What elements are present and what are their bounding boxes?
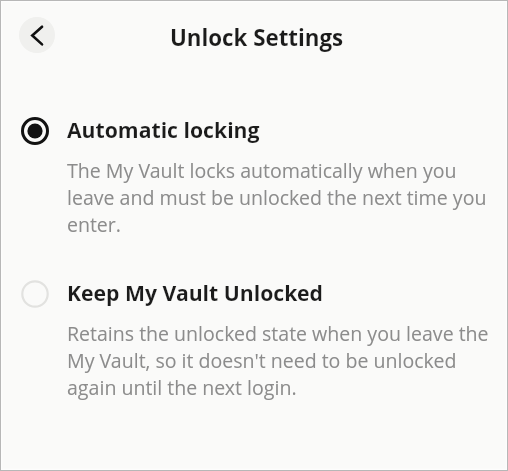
staticText: Keep My Vault Unlocked <box>67 278 323 307</box>
staticText: The My Vault locks automatically when yo… <box>67 157 497 238</box>
staticText: Unlock Settings <box>170 22 344 52</box>
button[interactable]: Back <box>19 17 55 53</box>
button[interactable]: Keep My Vault Unlocked <box>0 278 508 401</box>
staticText: Automatic locking <box>67 115 260 144</box>
staticText: Retains the unlocked state when you leav… <box>67 320 497 401</box>
button[interactable]: Automatic locking <box>0 115 508 238</box>
